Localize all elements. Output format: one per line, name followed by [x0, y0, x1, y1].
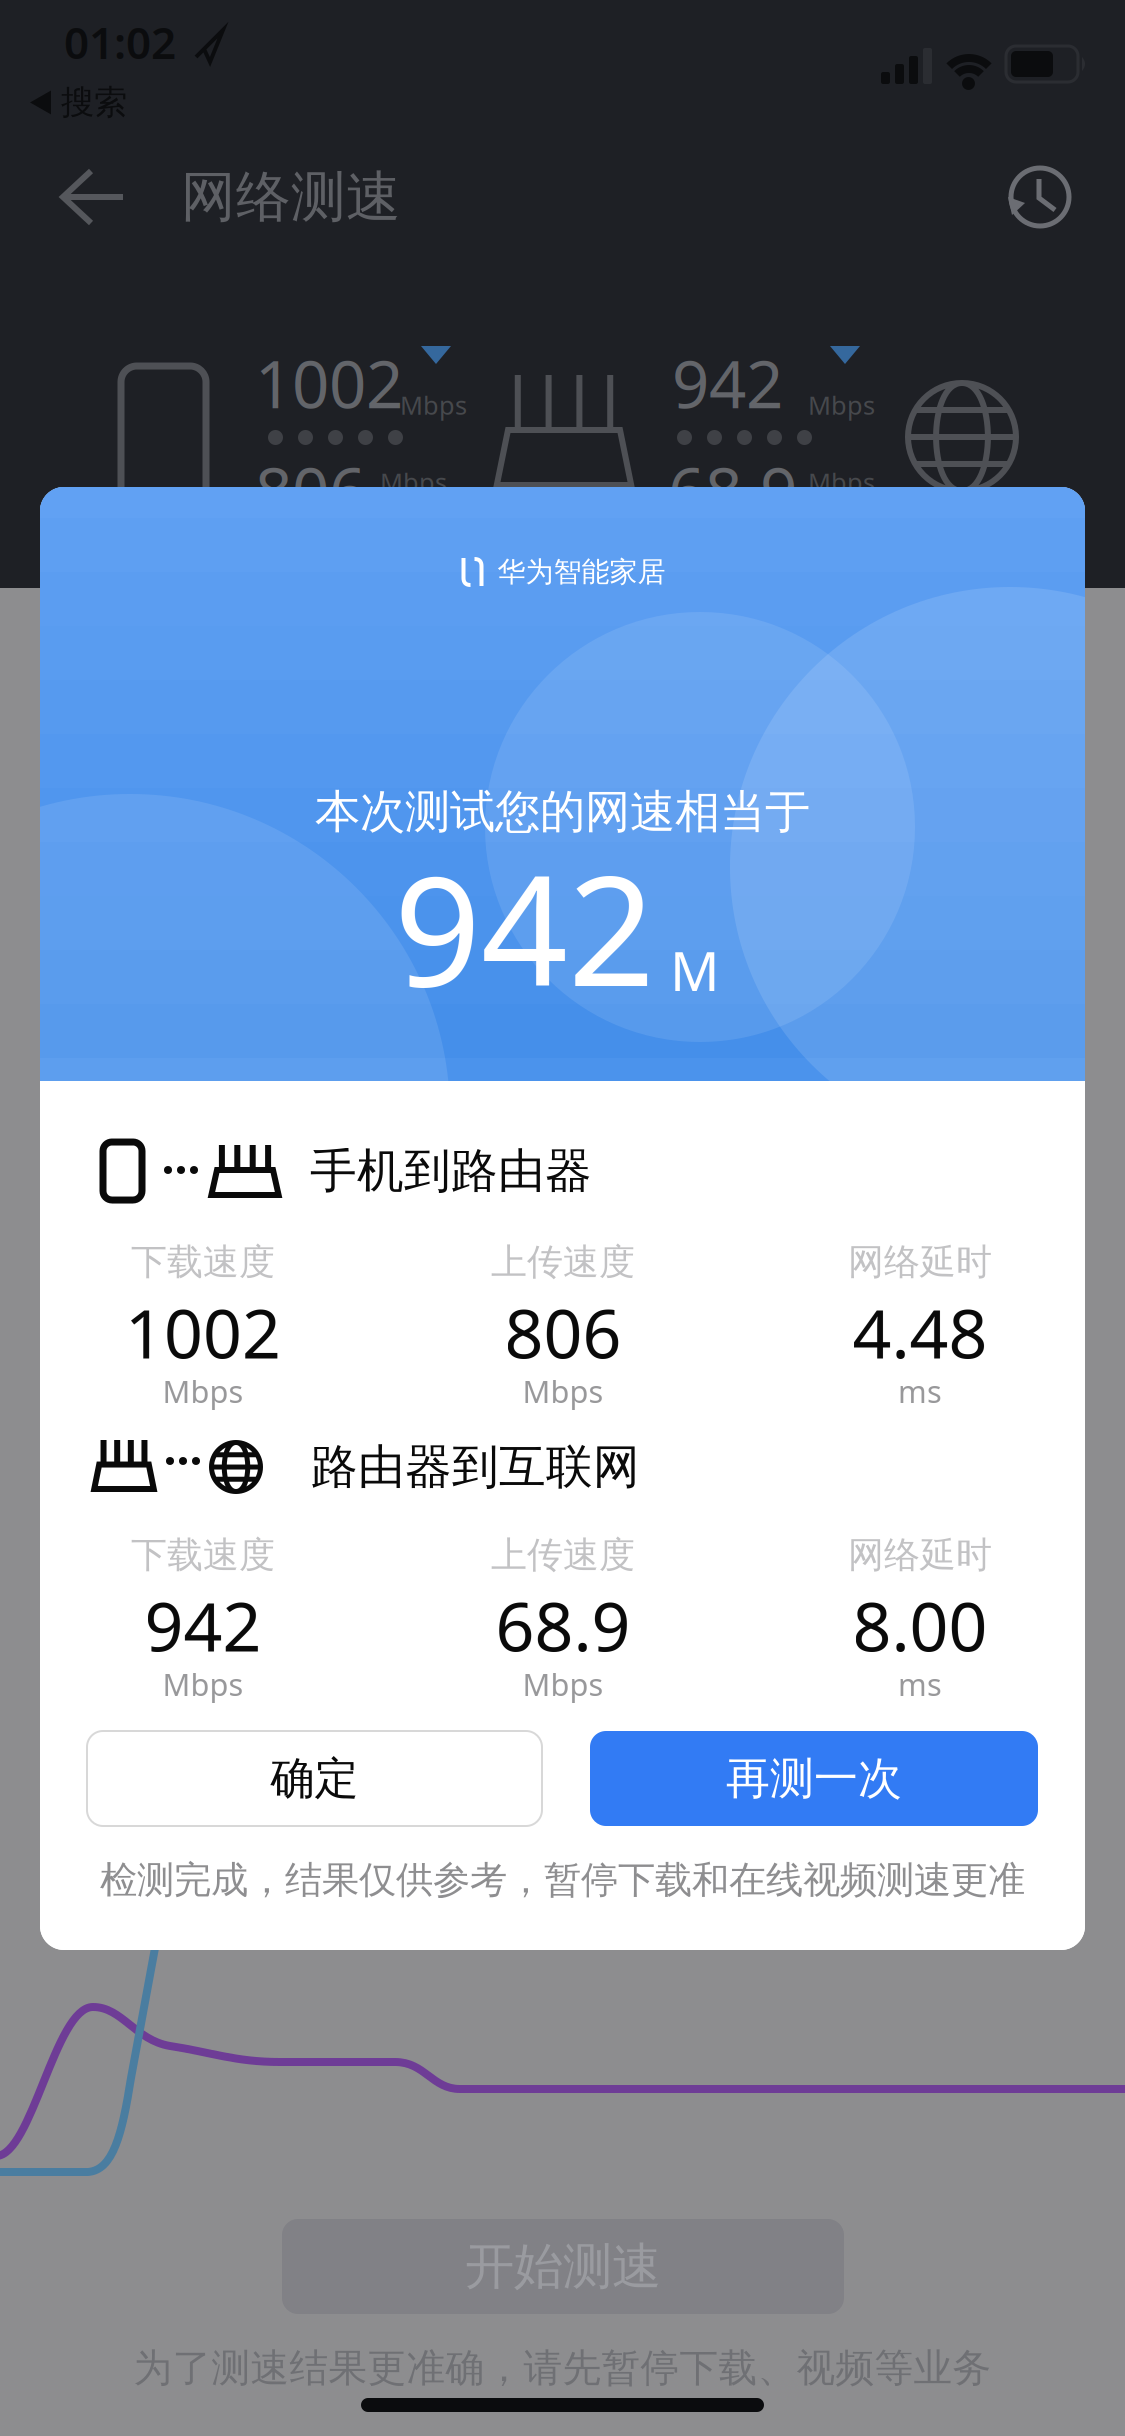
staticText: ms: [898, 1371, 942, 1411]
staticText: 开始测速: [465, 2236, 661, 2297]
staticText: 下载速度: [131, 1533, 275, 1577]
staticText: M: [670, 934, 720, 1006]
staticText: Mbps: [380, 465, 447, 499]
staticText: Mbps: [162, 1664, 243, 1704]
staticText: 806: [504, 1287, 621, 1377]
staticText: ms: [898, 1664, 942, 1704]
staticText: 华为智能家居: [497, 555, 665, 589]
staticText: Mbps: [162, 1371, 243, 1411]
staticText: 1002: [255, 340, 403, 426]
button[interactable]: 再测一次: [590, 1731, 1038, 1826]
staticText: 路由器到互联网: [311, 1438, 640, 1496]
staticText: 本次测试您的网速相当于: [315, 784, 810, 840]
staticText: 下载速度: [131, 1240, 275, 1284]
button[interactable]: 确定: [87, 1731, 542, 1826]
staticText: Mbps: [400, 388, 467, 422]
staticText: 68.9: [495, 1580, 630, 1670]
staticText: 手机到路由器: [310, 1142, 592, 1200]
staticText: 搜索: [61, 82, 127, 123]
staticText: 942: [672, 340, 783, 426]
staticText: 8.00: [852, 1580, 987, 1670]
button[interactable]: Back: [57, 168, 127, 226]
staticText: 942: [394, 826, 655, 1028]
button[interactable]: 开始测速: [282, 2219, 844, 2314]
staticText: 01:02: [64, 13, 176, 71]
staticText: 检测完成，结果仅供参考，暂停下载和在线视频测速更准: [100, 1857, 1025, 1903]
staticText: Mbps: [808, 388, 875, 422]
staticText: Mbps: [808, 465, 875, 499]
staticText: 942: [144, 1580, 261, 1670]
button[interactable]: History: [1008, 165, 1072, 229]
staticText: 再测一次: [726, 1751, 902, 1805]
staticText: 上传速度: [491, 1240, 635, 1284]
staticText: 网络延时: [848, 1533, 992, 1577]
staticText: 1002: [125, 1287, 281, 1377]
staticText: 网络测速: [181, 163, 401, 230]
staticText: 68.9: [668, 447, 797, 533]
staticText: 网络延时: [848, 1240, 992, 1284]
staticText: Mbps: [522, 1664, 603, 1704]
staticText: 确定: [270, 1751, 358, 1805]
staticText: Mbps: [522, 1371, 603, 1411]
button[interactable]: 搜索: [30, 82, 127, 123]
staticText: 上传速度: [491, 1533, 635, 1577]
staticText: 4.48: [852, 1287, 987, 1377]
staticText: 为了测速结果更准确，请先暂停下载、视频等业务: [133, 2344, 991, 2392]
staticText: 806: [255, 447, 366, 533]
